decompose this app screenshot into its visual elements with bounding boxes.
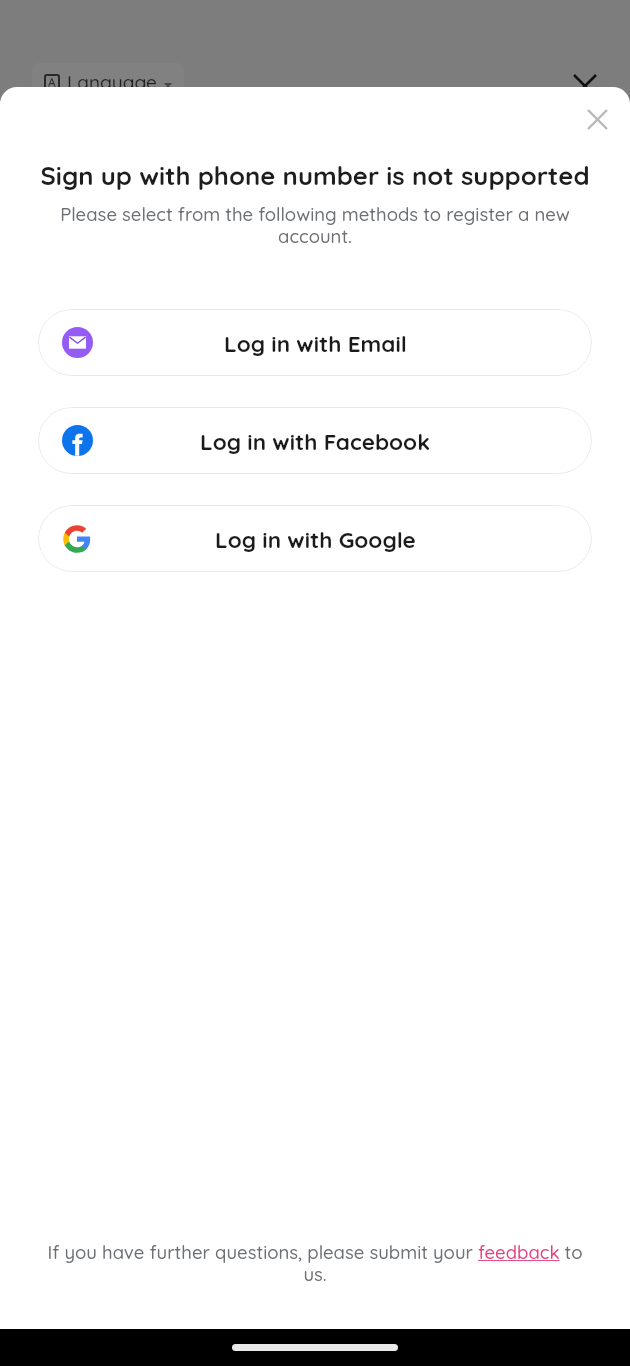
staticText: Sign up with phone number is not support… [12,159,618,191]
staticText: Log in with Email [224,329,407,357]
staticText: Please select from the following methods… [52,202,578,247]
staticText: Log in with Facebook [200,427,430,455]
staticText: A [48,75,56,90]
button[interactable]: Log in with Email [38,309,592,376]
button[interactable]: A [44,70,172,94]
button[interactable]: Log in with Google [38,505,592,572]
staticText: Log in with Google [215,525,416,553]
button[interactable]: Close page [566,67,604,105]
staticText: Language [67,70,157,94]
staticText: If you have further questions, please su… [40,1240,590,1285]
button[interactable]: Close [580,102,614,136]
button[interactable]: Log in with Facebook [38,407,592,474]
